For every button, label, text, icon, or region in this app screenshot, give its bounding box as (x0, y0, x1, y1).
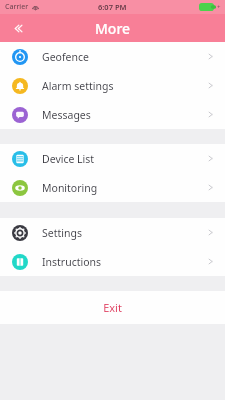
button[interactable]: Device List (0, 144, 225, 173)
staticText: Monitoring (42, 181, 98, 195)
button[interactable]: Messages (0, 100, 225, 129)
staticText: More (95, 19, 131, 38)
staticText: Instructions (42, 255, 102, 269)
staticText: Settings (42, 226, 82, 240)
staticText: 6:07 PM (98, 2, 127, 12)
button[interactable]: Alarm settings (0, 71, 225, 100)
button[interactable]: Exit (0, 291, 225, 324)
button[interactable]: Instructions (0, 247, 225, 276)
staticText: Geofence (42, 50, 89, 64)
staticText: + (217, 3, 221, 11)
staticText: Messages (42, 108, 91, 122)
button[interactable]: Settings (0, 218, 225, 247)
button[interactable]: Geofence (0, 42, 225, 71)
staticText: Carrier (5, 2, 29, 12)
button[interactable]: Back (5, 16, 29, 40)
staticText: Exit (103, 300, 122, 315)
staticText: Device List (42, 152, 95, 166)
button[interactable]: Monitoring (0, 173, 225, 202)
staticText: Alarm settings (42, 79, 114, 93)
